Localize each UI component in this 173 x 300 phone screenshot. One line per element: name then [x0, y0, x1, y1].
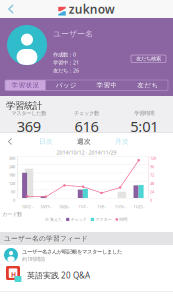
button[interactable]: Back [1, 0, 21, 18]
staticText: zuknow [69, 1, 115, 17]
staticText: 学習時間 [134, 110, 154, 117]
button[interactable]: 学習状況 [5, 80, 46, 90]
button[interactable]: バッジ [46, 80, 87, 90]
staticText: 240 [9, 164, 15, 169]
staticText: 友だち検索 [136, 55, 161, 62]
staticText: 友だち：26 [53, 67, 79, 74]
staticText: 369 [17, 117, 41, 136]
staticText: 11/23 - [133, 204, 144, 209]
staticText: 72 [150, 172, 154, 178]
staticText: 48 [150, 181, 154, 186]
staticText: 300 [9, 155, 15, 161]
staticText: ユーザー名 [53, 29, 93, 39]
staticText: 週次 [77, 137, 91, 146]
staticText: 月次 [115, 137, 129, 146]
button[interactable]: 友だち検索 [131, 55, 166, 62]
staticText: 10/19 - [40, 204, 51, 209]
staticText: 11/9 - [97, 204, 106, 209]
button[interactable]: 月次 [103, 135, 141, 148]
staticText: 学習状況 [11, 81, 39, 89]
button[interactable]: 週次 [65, 135, 103, 148]
button[interactable]: 日次 [27, 135, 65, 148]
staticText: 時間 [120, 217, 128, 222]
staticText: 学習中 [96, 81, 117, 89]
staticText: 2014/10/12 - 2014/11/29 [56, 149, 116, 156]
staticText: マスター [95, 217, 111, 222]
staticText: マスターした数 [11, 110, 46, 117]
staticText: バッジ [56, 81, 77, 89]
staticText: 96 [150, 164, 154, 169]
button[interactable]: 学習中 [86, 80, 127, 90]
staticText: チェック数 [74, 110, 99, 117]
staticText: 180 [9, 172, 15, 178]
staticText: 英語実践 20 Q&A [27, 270, 90, 281]
staticText: 5:01 [130, 117, 158, 136]
staticText: カード数 [2, 211, 22, 218]
staticText: 60 [11, 189, 15, 194]
staticText: 約1時間前 [22, 255, 45, 263]
staticText: 学習統計 [6, 100, 42, 111]
staticText: 10/12 - [22, 204, 33, 209]
staticText: H [11, 270, 16, 279]
staticText: 24 [150, 189, 154, 194]
staticText: 日次 [39, 137, 53, 146]
staticText: 0 [150, 197, 152, 203]
staticText: 作成数：0 [53, 51, 76, 58]
staticText: 10/26 - [59, 204, 70, 209]
staticText: 0 [13, 197, 15, 203]
staticText: 616 [74, 117, 98, 136]
staticText: 11/2 - [78, 204, 87, 209]
button[interactable]: ユーザー名さんが暗記帳をマスターしました [0, 245, 173, 300]
staticText: 友だち [137, 81, 158, 89]
staticText: 覚えた [50, 217, 62, 222]
staticText: チェック [71, 217, 87, 222]
staticText: ユーザー名の学習フィード [4, 234, 88, 243]
staticText: ユーザー名さんが暗記帳をマスターしました [22, 248, 122, 255]
staticText: 学習中：21 [53, 59, 79, 66]
staticText: 120 [150, 155, 156, 161]
button[interactable]: Previous period [2, 135, 18, 148]
button[interactable]: 友だち [127, 80, 168, 90]
staticText: 120 [9, 181, 15, 186]
staticText: 11/16 - [115, 204, 126, 209]
